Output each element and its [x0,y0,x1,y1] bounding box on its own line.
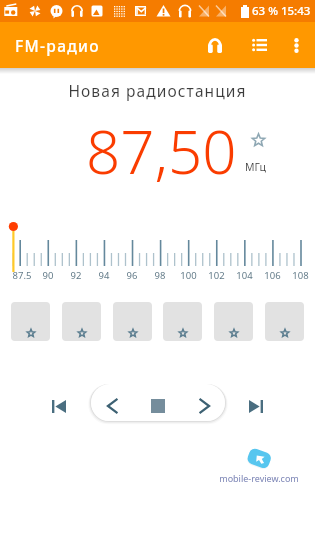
staticText: 87,50 [86,110,237,192]
staticText: mobile-review.com [206,472,312,484]
staticText: 102 [203,269,230,282]
staticText: 92 [66,269,86,282]
staticText: 63 % 15:43 [252,3,311,19]
staticText: 106 [259,269,286,282]
staticText: FM-радио [15,35,100,56]
staticText: 104 [231,269,258,282]
button[interactable]: Stop [141,389,175,423]
button[interactable]: Preset 6 [265,302,304,341]
button[interactable]: Preset 3 [113,302,152,341]
button[interactable]: Preset 4 [163,302,202,341]
button[interactable]: Save station [246,128,270,152]
staticText: 94 [94,269,114,282]
staticText: 108 [287,269,314,282]
staticText: 100 [175,269,202,282]
staticText: 98 [150,269,170,282]
staticText: МГц [245,160,266,174]
staticText: 87.5 [5,269,39,282]
staticText: Новая радиостанция [0,80,315,101]
staticText: 90 [38,269,58,282]
button[interactable]: Preset 1 [11,302,50,341]
button[interactable]: Preset 5 [214,302,253,341]
button[interactable]: Previous station [42,389,76,423]
button[interactable]: Preset 2 [62,302,101,341]
button[interactable]: Seek up [187,389,221,423]
button[interactable]: Station list [241,27,277,63]
staticText: 96 [122,269,142,282]
button[interactable]: More options [278,27,314,63]
button[interactable]: Headphones [197,27,233,63]
button[interactable]: Next station [239,389,273,423]
button[interactable]: Seek down [95,389,129,423]
